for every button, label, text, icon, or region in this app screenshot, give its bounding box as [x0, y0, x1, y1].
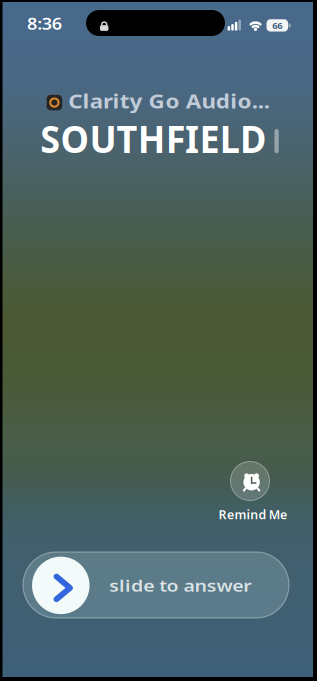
button[interactable]: slide to answer — [23, 552, 289, 618]
staticText: SOUTHFIELD — [36, 114, 270, 163]
button[interactable]: Remind Me — [216, 460, 286, 520]
staticText: Clarity Go Audio... — [85, 89, 253, 114]
staticText: 66 — [272, 19, 282, 32]
staticText: slide to answer — [122, 575, 239, 596]
staticText: Remind Me — [216, 505, 290, 523]
staticText: 8:36 — [29, 13, 60, 34]
